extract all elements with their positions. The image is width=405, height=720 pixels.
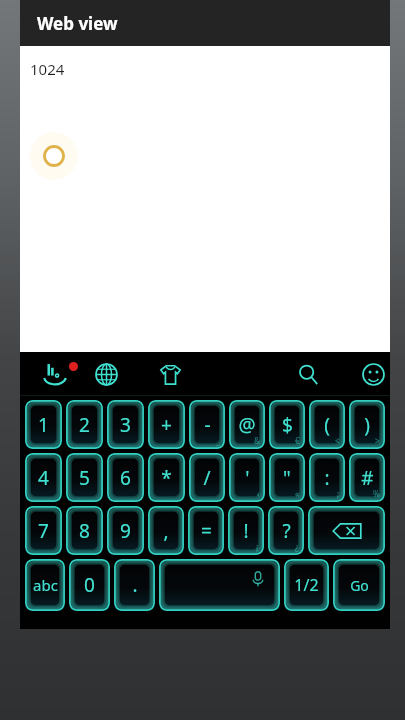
button[interactable]: 3 xyxy=(107,400,144,449)
button[interactable]: Themes xyxy=(152,352,188,396)
staticText: , xyxy=(163,518,169,544)
staticText: $ xyxy=(282,412,293,438)
staticText: 6 xyxy=(120,465,131,491)
button[interactable]: Voice input, space xyxy=(159,559,280,611)
staticText: " xyxy=(283,465,291,491)
staticText: Go xyxy=(350,576,369,595)
button[interactable]: = xyxy=(188,506,224,555)
staticText: 8 xyxy=(79,518,90,544)
button[interactable]: " xyxy=(269,453,305,502)
staticText: - xyxy=(204,412,211,438)
button[interactable]: / xyxy=(189,453,225,502)
staticText: . xyxy=(132,572,138,598)
button[interactable]: 7 xyxy=(25,506,62,555)
button[interactable]: + xyxy=(148,400,185,449)
button[interactable]: 2 xyxy=(66,400,103,449)
staticText: _ xyxy=(216,435,220,446)
button[interactable]: Emoji xyxy=(355,352,391,396)
staticText: 3 xyxy=(120,412,131,438)
staticText: ¿ xyxy=(295,541,299,552)
button[interactable]: 9 xyxy=(107,506,144,555)
staticText: ( xyxy=(324,412,330,438)
staticText: 9 xyxy=(120,518,131,544)
button[interactable]: * xyxy=(148,453,185,502)
button[interactable]: 0 xyxy=(69,559,110,611)
staticText: : xyxy=(324,465,330,491)
button[interactable]: Search xyxy=(290,352,326,396)
button[interactable]: ' xyxy=(229,453,265,502)
button[interactable]: Languages xyxy=(88,352,124,396)
staticText: abc xyxy=(33,575,58,595)
staticText: & xyxy=(254,435,260,446)
button[interactable]: abc xyxy=(25,559,65,611)
button[interactable]: 4 xyxy=(25,453,62,502)
button[interactable]: ) xyxy=(349,400,385,449)
staticText: @ xyxy=(238,412,256,438)
button[interactable]: TouchPal menu xyxy=(36,352,88,396)
button[interactable]: 1 xyxy=(25,400,62,449)
staticText: # xyxy=(361,465,374,491)
staticText: 2 xyxy=(79,412,90,438)
staticText: + xyxy=(161,412,172,438)
button[interactable]: . xyxy=(114,559,155,611)
staticText: % xyxy=(373,488,380,499)
button[interactable]: ? xyxy=(268,506,304,555)
button[interactable]: $ xyxy=(269,400,305,449)
staticText: / xyxy=(203,465,211,491)
staticText: ? xyxy=(282,518,291,544)
staticText: « xyxy=(295,488,300,499)
staticText: ) xyxy=(364,412,370,438)
staticText: ¡ xyxy=(256,541,259,552)
button[interactable]: - xyxy=(189,400,225,449)
button[interactable]: Go xyxy=(333,559,385,611)
staticText: Web view xyxy=(37,12,118,35)
button[interactable]: 6 xyxy=(107,453,144,502)
button[interactable]: : xyxy=(309,453,345,502)
staticText: ‹ xyxy=(257,488,260,499)
button[interactable]: Backspace xyxy=(308,506,385,555)
button[interactable]: 5 xyxy=(66,453,103,502)
button[interactable]: ! xyxy=(228,506,264,555)
button[interactable]: 8 xyxy=(66,506,103,555)
staticText: 7 xyxy=(38,518,49,544)
staticText: ; xyxy=(337,488,340,499)
staticText: > xyxy=(375,435,380,446)
staticText: 1/2 xyxy=(294,574,319,596)
staticText: = xyxy=(201,518,212,544)
staticText: 1024 xyxy=(30,59,65,79)
button[interactable]: @ xyxy=(229,400,265,449)
button[interactable]: , xyxy=(148,506,184,555)
staticText: ! xyxy=(243,518,249,544)
staticText: 0 xyxy=(84,572,95,598)
staticText: < xyxy=(335,435,340,446)
staticText: * xyxy=(161,465,172,491)
button[interactable]: ( xyxy=(309,400,345,449)
staticText: ' xyxy=(245,465,250,491)
button[interactable]: 1/2 xyxy=(284,559,329,611)
staticText: 1 xyxy=(38,412,49,438)
staticText: € xyxy=(295,435,300,446)
button[interactable]: # xyxy=(349,453,385,502)
staticText: 4 xyxy=(38,465,49,491)
staticText: 5 xyxy=(79,465,90,491)
button[interactable]: Web view xyxy=(20,0,390,46)
